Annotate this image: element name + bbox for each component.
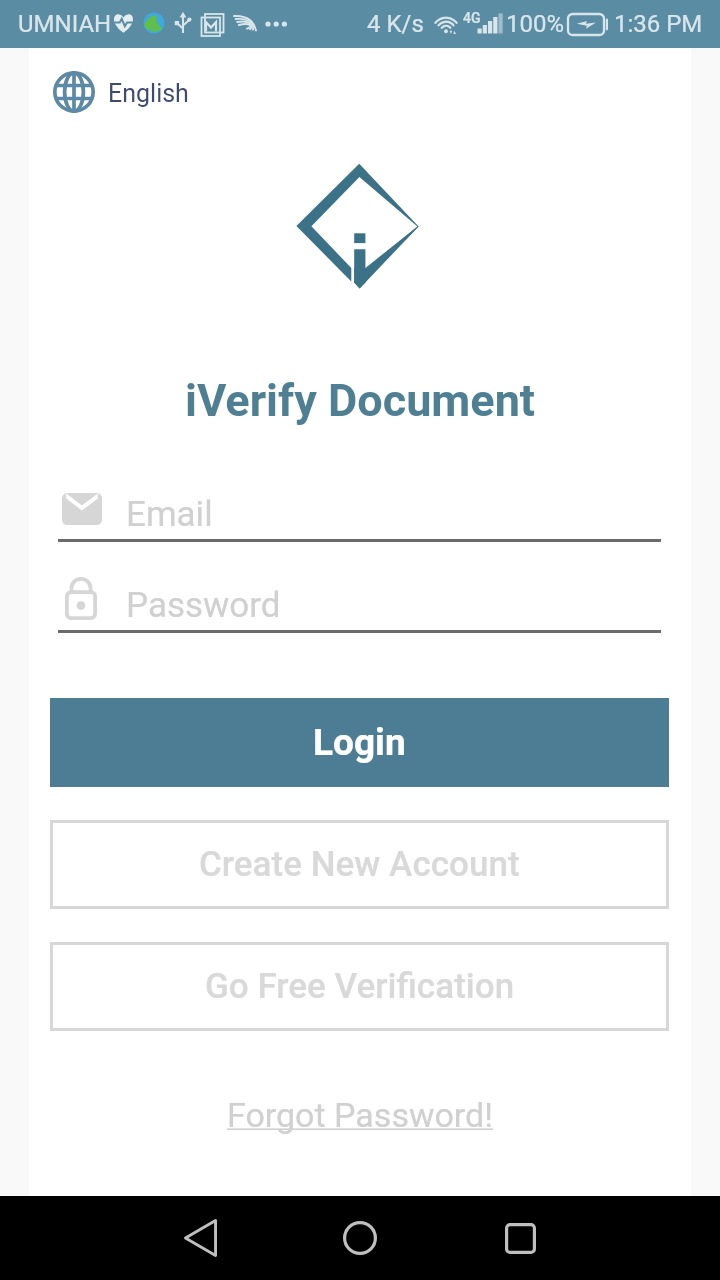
button[interactable]: Email [50, 481, 661, 542]
staticText: Login [313, 721, 406, 764]
button[interactable]: Login [50, 698, 669, 787]
button[interactable]: Forgot Password! [0, 1095, 720, 1135]
staticText: 4G [463, 10, 481, 26]
button[interactable]: English [53, 71, 189, 116]
staticText: 100% [506, 10, 565, 38]
button[interactable]: Recent apps [480, 1196, 560, 1280]
button[interactable]: Back [160, 1196, 240, 1280]
staticText: 4 K/s [367, 10, 424, 38]
button[interactable]: Password [50, 572, 661, 633]
button[interactable]: Go Free Verification [50, 942, 669, 1031]
staticText: Password [126, 585, 281, 626]
staticText: 1:36 PM [614, 10, 703, 38]
button[interactable]: Home [320, 1196, 400, 1280]
staticText: iVerify Document [0, 374, 720, 427]
staticText: Email [126, 494, 213, 535]
staticText: English [108, 79, 189, 108]
staticText: UMNIAH [18, 10, 112, 38]
staticText: Go Free Verification [205, 966, 515, 1007]
staticText: Create New Account [199, 844, 520, 885]
button[interactable]: Create New Account [50, 820, 669, 909]
